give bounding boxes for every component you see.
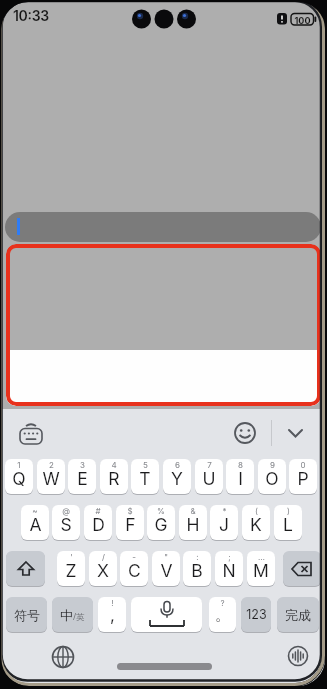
button[interactable]: ) bbox=[274, 505, 302, 540]
staticText: E bbox=[77, 468, 88, 489]
staticText: ( bbox=[255, 506, 258, 516]
staticText: H bbox=[186, 514, 200, 535]
staticText: # bbox=[95, 506, 101, 516]
staticText: 。 bbox=[215, 606, 230, 625]
staticText: G bbox=[154, 514, 168, 535]
staticText: 6 bbox=[175, 460, 180, 470]
staticText: /英 bbox=[73, 611, 85, 623]
staticText: N bbox=[222, 560, 236, 581]
staticText: F bbox=[125, 514, 136, 535]
staticText: I bbox=[238, 468, 243, 489]
button[interactable]: & bbox=[179, 505, 207, 540]
staticText: D bbox=[92, 514, 105, 535]
staticText: V bbox=[160, 560, 173, 581]
staticText: Z bbox=[65, 560, 77, 581]
staticText: 10:33 bbox=[13, 7, 49, 24]
staticText: % bbox=[157, 506, 165, 516]
staticText: @ bbox=[62, 506, 70, 516]
staticText: M bbox=[253, 560, 269, 581]
button[interactable]: ~ bbox=[21, 505, 49, 540]
staticText: B bbox=[191, 560, 203, 581]
button[interactable]: ' bbox=[57, 551, 85, 586]
staticText: 8 bbox=[238, 460, 243, 470]
button[interactable]: / bbox=[89, 551, 117, 586]
staticText: ~ bbox=[32, 506, 38, 516]
staticText: 7 bbox=[207, 460, 212, 470]
button[interactable]: 7 bbox=[195, 459, 223, 494]
staticText: ' bbox=[70, 552, 73, 562]
button[interactable] bbox=[16, 420, 46, 448]
button[interactable]: ; bbox=[215, 551, 243, 586]
staticText: T bbox=[139, 468, 151, 489]
staticText: 1 bbox=[17, 460, 21, 470]
staticText: 123 bbox=[246, 607, 267, 622]
button[interactable]: - bbox=[120, 551, 148, 586]
button[interactable]: 9 bbox=[258, 459, 286, 494]
button[interactable]: 8 bbox=[226, 459, 254, 494]
staticText: K bbox=[250, 514, 262, 535]
button[interactable]: 4 bbox=[100, 459, 128, 494]
staticText: J bbox=[219, 514, 229, 535]
button[interactable]: 完成 bbox=[277, 597, 319, 632]
staticText: W bbox=[42, 468, 60, 489]
button[interactable]: @ bbox=[52, 505, 80, 540]
staticText: ? bbox=[220, 598, 225, 608]
staticText: * bbox=[222, 506, 227, 516]
button[interactable] bbox=[5, 212, 321, 242]
staticText: L bbox=[283, 514, 293, 535]
button[interactable]: # bbox=[84, 505, 112, 540]
button[interactable] bbox=[283, 551, 321, 586]
staticText: 3 bbox=[80, 460, 85, 470]
staticText: S bbox=[60, 514, 72, 535]
staticText: P bbox=[297, 468, 309, 489]
button[interactable]: : bbox=[183, 551, 211, 586]
button[interactable]: 3 bbox=[68, 459, 96, 494]
button[interactable]: ! bbox=[98, 597, 126, 632]
staticText: ) bbox=[287, 506, 290, 516]
button[interactable] bbox=[6, 551, 45, 586]
button[interactable] bbox=[284, 424, 308, 442]
staticText: 100 bbox=[291, 15, 314, 26]
staticText: & bbox=[190, 506, 196, 516]
button[interactable]: 符号 bbox=[6, 597, 47, 632]
button[interactable]: 6 bbox=[163, 459, 191, 494]
staticText: $ bbox=[127, 506, 133, 516]
staticText: C bbox=[128, 560, 141, 581]
button[interactable]: " bbox=[152, 551, 180, 586]
button[interactable]: 0 bbox=[289, 459, 317, 494]
staticText: 5 bbox=[143, 460, 148, 470]
button[interactable]: 123 bbox=[241, 597, 271, 632]
button[interactable]: ( bbox=[242, 505, 270, 540]
button[interactable]: * bbox=[210, 505, 238, 540]
staticText: ! bbox=[111, 598, 114, 608]
staticText: 4 bbox=[111, 460, 117, 470]
staticText: R bbox=[108, 468, 120, 489]
button[interactable] bbox=[233, 421, 257, 445]
staticText: Q bbox=[12, 468, 26, 489]
button[interactable] bbox=[283, 642, 313, 672]
button[interactable]: 2 bbox=[37, 459, 65, 494]
button[interactable]: ? bbox=[209, 597, 236, 632]
button[interactable]: 5 bbox=[131, 459, 159, 494]
staticText: A bbox=[29, 514, 42, 535]
staticText: X bbox=[97, 560, 109, 581]
button[interactable]: 1 bbox=[5, 459, 33, 494]
staticText: 2 bbox=[49, 460, 54, 470]
button[interactable]: $ bbox=[116, 505, 144, 540]
button[interactable] bbox=[48, 642, 78, 672]
staticText: ; bbox=[228, 552, 231, 562]
staticText: Y bbox=[171, 468, 183, 489]
staticText: : bbox=[196, 552, 199, 562]
staticText: 完成 bbox=[285, 607, 311, 623]
staticText: 0 bbox=[300, 460, 306, 470]
button[interactable]: % bbox=[147, 505, 175, 540]
staticText: , bbox=[110, 605, 115, 626]
button[interactable]: … bbox=[247, 551, 275, 586]
staticText: … bbox=[258, 552, 265, 562]
staticText: " bbox=[164, 552, 168, 562]
button[interactable]: 中 bbox=[52, 597, 93, 632]
staticText: U bbox=[202, 468, 216, 489]
button[interactable] bbox=[131, 597, 202, 632]
staticText: O bbox=[265, 468, 279, 489]
staticText: 符号 bbox=[14, 607, 40, 623]
